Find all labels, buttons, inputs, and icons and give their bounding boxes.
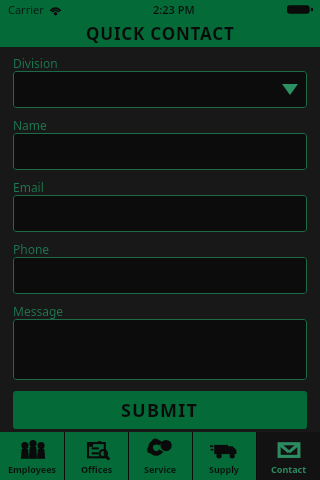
staticText: Offices [81, 463, 113, 475]
staticText: QUICK CONTACT [86, 22, 235, 45]
staticText: Email [13, 179, 44, 195]
staticText: Employees [8, 463, 57, 475]
button[interactable]: Phone [13, 257, 307, 294]
staticText: Name [13, 117, 47, 133]
staticText: Carrier [8, 2, 44, 17]
staticText: Phone [13, 241, 50, 257]
staticText: Service [144, 463, 177, 475]
staticText: Message [13, 303, 64, 319]
button[interactable]: Email [13, 195, 307, 232]
button[interactable]: Contact [257, 432, 320, 480]
button[interactable]: Name [13, 133, 307, 170]
button[interactable]: Service [129, 432, 192, 480]
button[interactable]: Message [13, 319, 307, 380]
staticText: Division [13, 55, 58, 71]
staticText: Supply [209, 463, 240, 475]
staticText: Contact [271, 463, 307, 475]
button[interactable]: Supply [193, 432, 256, 480]
button[interactable]: Employees [0, 432, 64, 480]
button[interactable]: Select division [13, 71, 307, 108]
button[interactable]: SUBMIT [13, 391, 307, 429]
staticText: 2:23 PM [153, 2, 195, 17]
button[interactable]: Offices [65, 432, 128, 480]
staticText: SUBMIT [121, 398, 199, 423]
